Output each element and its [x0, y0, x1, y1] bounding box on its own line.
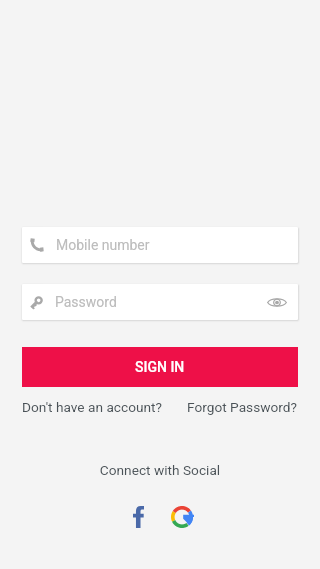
button[interactable]: Show password: [265, 290, 289, 314]
staticText: Mobile number: [56, 237, 150, 253]
button[interactable]: Don't have an account?: [22, 399, 163, 415]
button[interactable]: Sign in with Facebook: [124, 502, 153, 531]
button[interactable]: SIGN IN: [22, 347, 298, 387]
button[interactable]: Sign in with Google: [168, 502, 197, 531]
button[interactable]: Forgot Password?: [187, 399, 298, 415]
staticText: Connect with Social: [0, 462, 320, 478]
staticText: SIGN IN: [135, 359, 185, 375]
button[interactable]: Password: [22, 284, 298, 320]
button[interactable]: Mobile number: [22, 227, 298, 263]
staticText: Password: [55, 294, 117, 310]
